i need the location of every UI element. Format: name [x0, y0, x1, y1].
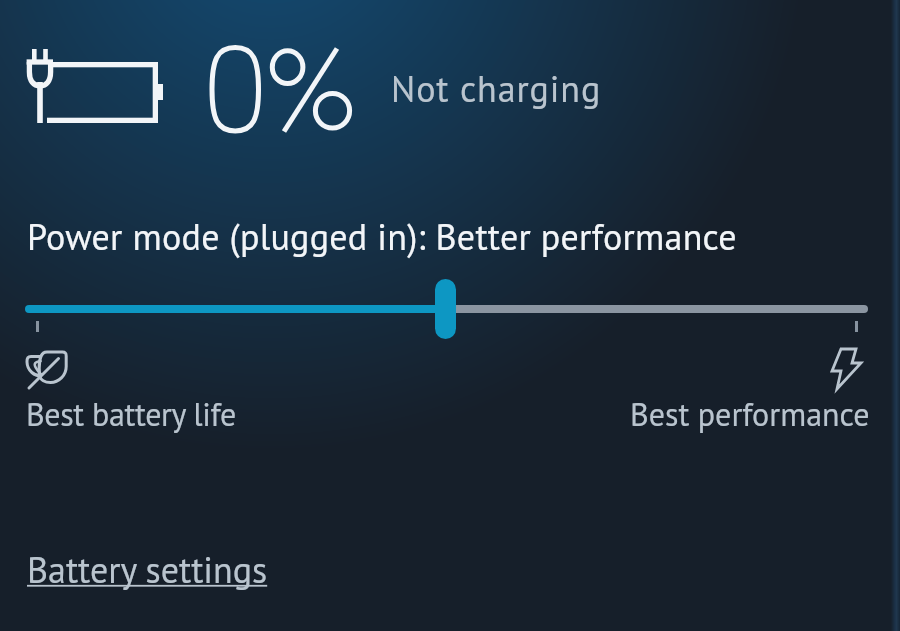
button[interactable]: Battery settings	[27, 546, 268, 593]
button[interactable]: Best battery life	[26, 393, 236, 434]
staticText: Power mode (plugged in): Better performa…	[27, 213, 737, 260]
staticText: Best performance	[630, 393, 870, 434]
button[interactable]: Power mode slider: Better performance	[25, 279, 868, 340]
button[interactable]: Best performance	[828, 346, 864, 394]
staticText: Battery settings	[27, 546, 268, 593]
button[interactable]: Best battery life	[22, 346, 72, 394]
staticText: Not charging	[391, 65, 602, 112]
staticText: Best battery life	[26, 393, 236, 434]
button[interactable]: Best performance	[630, 393, 870, 434]
